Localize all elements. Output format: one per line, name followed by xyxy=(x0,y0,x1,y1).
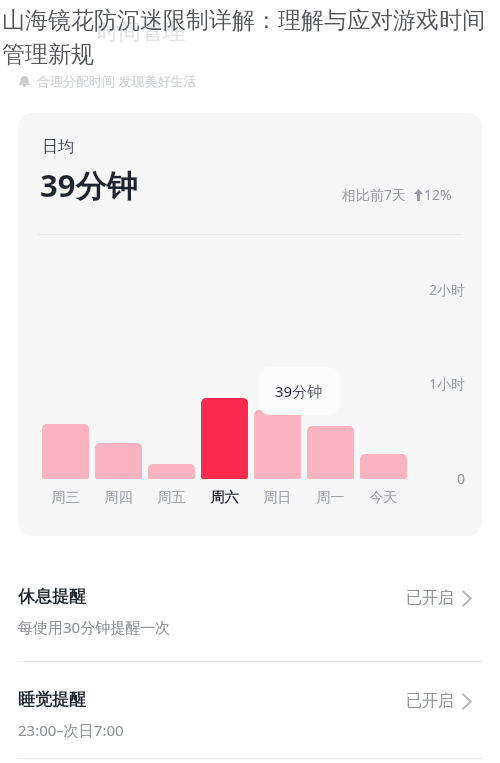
staticText: 休息提醒 xyxy=(18,586,86,607)
button[interactable]: 睡觉提醒 xyxy=(0,663,500,763)
staticText: 每使用30分钟提醒一次 xyxy=(18,617,171,637)
staticText: 周六 xyxy=(201,489,248,507)
staticText: 39分钟 xyxy=(40,164,138,206)
staticText: 2小时 xyxy=(395,280,465,299)
staticText: 时间管理 xyxy=(97,18,185,46)
staticText: 39分钟 xyxy=(275,381,323,401)
staticText: 0 xyxy=(395,469,465,488)
staticText: 周五 xyxy=(148,489,195,507)
other: Open 睡觉提醒 settings xyxy=(462,693,472,710)
staticText: 已开启 xyxy=(406,691,454,711)
staticText: 已开启 xyxy=(406,588,454,608)
staticText: 周日 xyxy=(254,489,301,507)
staticText: 山海镜花防沉迷限制详解：理解与应对游戏时间管理新规 xyxy=(2,6,500,69)
staticText: 12% xyxy=(424,185,452,204)
staticText: 睡觉提醒 xyxy=(18,689,86,710)
staticText: 周一 xyxy=(307,489,354,507)
staticText: 相比前7天 xyxy=(342,185,407,204)
other: Open 休息提醒 settings xyxy=(462,590,472,607)
staticText: 周四 xyxy=(95,489,142,507)
button[interactable]: 日均 xyxy=(18,113,482,536)
staticText: 23:00–次日7:00 xyxy=(18,720,124,740)
staticText: 合理分配时间 发现美好生活 xyxy=(37,72,197,90)
staticText: 今天 xyxy=(360,489,407,507)
staticText: 1小时 xyxy=(395,374,465,393)
staticText: 日均 xyxy=(42,137,74,157)
button[interactable]: 休息提醒 xyxy=(0,560,500,660)
staticText: 周三 xyxy=(42,489,89,507)
